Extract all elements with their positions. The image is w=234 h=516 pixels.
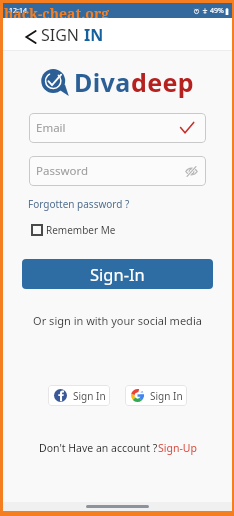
staticText: hack-cheat.org — [4, 4, 110, 19]
button[interactable]: Email — [29, 113, 206, 143]
staticText: 49% — [210, 6, 224, 16]
staticText: Or sign in with your social media — [3, 313, 232, 328]
button[interactable]: Sign In — [48, 385, 110, 406]
button[interactable]: Sign In — [125, 385, 187, 406]
staticText: Sign In — [150, 389, 183, 403]
button[interactable]: Remember Me — [29, 221, 118, 239]
button[interactable]: Sign-In — [22, 259, 213, 289]
button[interactable]: Show password — [185, 165, 198, 178]
staticText: Don't Have an account ? — [39, 441, 158, 455]
staticText: Password — [36, 163, 89, 179]
staticText: Diva — [74, 65, 131, 99]
staticText: 12:14 — [9, 6, 27, 16]
button[interactable]: Password — [29, 156, 206, 186]
staticText: IN — [84, 24, 104, 46]
staticText: deep — [131, 65, 195, 99]
button[interactable]: Back — [22, 28, 40, 46]
button[interactable]: Sign-Up — [158, 441, 197, 455]
staticText: Sign In — [73, 389, 106, 403]
staticText: SIGN — [41, 24, 84, 46]
staticText: Remember Me — [46, 223, 116, 237]
staticText: Email — [36, 120, 66, 136]
button[interactable]: Forgotten password ? — [28, 197, 130, 211]
staticText: Sign-In — [90, 263, 145, 285]
